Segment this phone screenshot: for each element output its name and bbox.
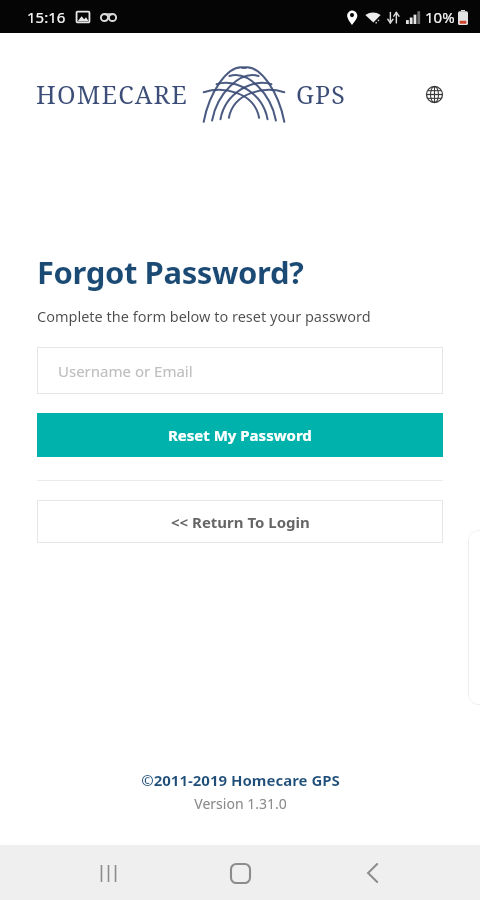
button[interactable]: Reset My Password: [37, 413, 443, 457]
button[interactable]: Home: [216, 849, 264, 897]
staticText: << Return To Login: [171, 512, 310, 532]
button[interactable]: Change language: [421, 81, 447, 107]
staticText: 10%: [425, 7, 455, 27]
staticText: Reset My Password: [168, 425, 312, 445]
staticText: GPS: [296, 77, 347, 111]
staticText: ©2011-2019 Homecare GPS: [141, 770, 340, 790]
button[interactable]: Back: [348, 849, 396, 897]
button[interactable]: << Return To Login: [37, 500, 443, 543]
staticText: Version 1.31.0: [194, 794, 287, 813]
button[interactable]: Username or Email: [37, 347, 443, 394]
staticText: 15:16: [27, 7, 66, 27]
button[interactable]: Recent apps: [84, 849, 132, 897]
staticText: Forgot Password?: [37, 251, 304, 293]
staticText: HOMECARE: [36, 77, 188, 111]
staticText: Username or Email: [58, 361, 193, 381]
staticText: Complete the form below to reset your pa…: [37, 306, 371, 326]
